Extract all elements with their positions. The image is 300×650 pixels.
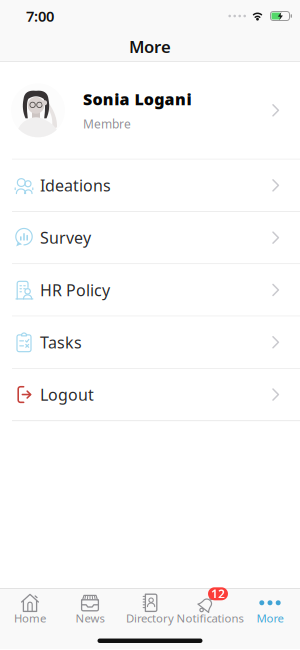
button[interactable]: Home bbox=[0, 593, 60, 628]
staticText: Sonia Logani bbox=[83, 88, 191, 110]
staticText: More bbox=[129, 35, 171, 58]
staticText: Tasks bbox=[40, 332, 82, 353]
staticText: 12 bbox=[211, 586, 225, 602]
button[interactable]: More bbox=[240, 593, 300, 628]
button[interactable]: News bbox=[60, 593, 120, 628]
staticText: Membre bbox=[83, 116, 131, 132]
staticText: Logout bbox=[40, 384, 94, 405]
button[interactable]: Directory bbox=[120, 593, 180, 628]
button[interactable]: Ideations bbox=[0, 160, 300, 211]
button[interactable]: Logout bbox=[0, 369, 300, 420]
button[interactable]: 12 bbox=[180, 593, 240, 628]
button[interactable]: Sonia Logani bbox=[0, 62, 300, 159]
button[interactable]: Tasks bbox=[0, 316, 300, 368]
staticText: HR Policy bbox=[40, 279, 110, 300]
staticText: 7:00 bbox=[26, 6, 54, 26]
staticText: News bbox=[75, 610, 104, 626]
staticText: More bbox=[256, 610, 283, 626]
staticText: Ideations bbox=[40, 175, 111, 196]
staticText: Directory bbox=[126, 610, 174, 626]
button[interactable]: HR Policy bbox=[0, 264, 300, 316]
staticText: Home bbox=[14, 610, 46, 626]
staticText: Notifications bbox=[176, 610, 243, 626]
staticText: Survey bbox=[40, 227, 91, 248]
button[interactable]: Survey bbox=[0, 212, 300, 263]
